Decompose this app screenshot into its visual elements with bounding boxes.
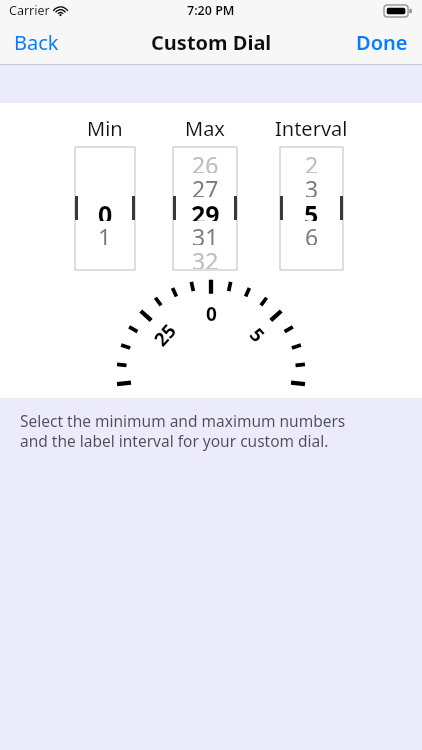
staticText: 31 [192,221,219,245]
staticText: 25 [148,318,182,352]
staticText: 27 [192,173,219,197]
button[interactable]: Min picker [75,147,135,270]
staticText: 26 [192,149,219,173]
staticText: 2 [305,149,319,173]
staticText: 29 [191,197,220,221]
staticText: 0 [206,301,217,327]
staticText: 5 [244,322,271,348]
staticText: Interval [275,115,348,142]
staticText: 6 [305,221,319,245]
staticText: 3 [305,173,319,197]
button[interactable]: Done [342,22,422,63]
staticText: Min [87,115,123,142]
staticText: Custom Dial [151,29,272,56]
staticText: 1 [98,221,112,245]
button[interactable]: Back [0,22,73,63]
staticText: Back [14,29,59,56]
staticText: 5 [304,197,319,221]
button[interactable]: Max picker [173,147,237,270]
button[interactable]: Interval picker [280,147,343,270]
staticText: Max [185,115,225,142]
staticText: 7:20 PM [187,2,235,19]
staticText: Done [356,29,408,56]
staticText: Select the minimum and maximum numbers a… [20,410,346,452]
staticText: 0 [98,197,113,221]
staticText: 32 [192,245,219,269]
staticText: Carrier [9,2,50,19]
